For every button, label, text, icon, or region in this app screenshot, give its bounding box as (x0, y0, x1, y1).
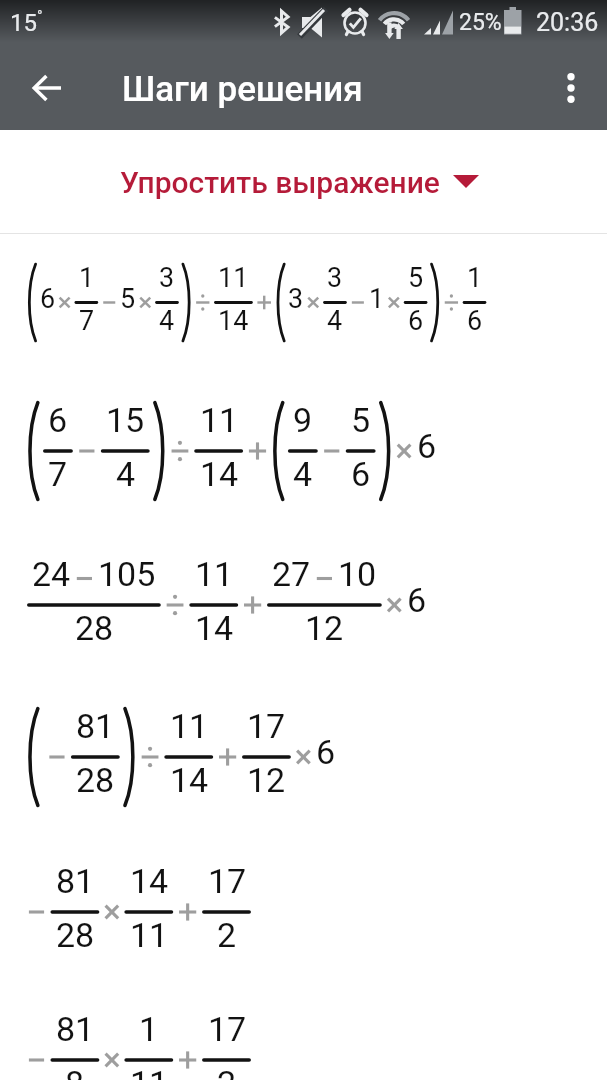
staticText: Упростить выражение (120, 165, 440, 200)
staticText: 6 (467, 305, 483, 337)
staticText: Шаги решения (122, 69, 363, 110)
staticText: 11 (130, 915, 169, 955)
staticText: 81 (56, 861, 95, 901)
staticText: 7 (48, 454, 68, 494)
staticText: 12 (247, 760, 286, 800)
staticText: 81 (56, 1009, 95, 1049)
staticText: 3 (288, 283, 304, 315)
button[interactable]: Упростить выражение (0, 130, 607, 233)
staticText: 7 (79, 305, 95, 337)
staticText: 11 (218, 262, 249, 294)
staticText: 14 (195, 608, 234, 648)
staticText: 25% (459, 9, 502, 36)
button[interactable]: More options (543, 60, 599, 116)
staticText: 15 (106, 400, 145, 440)
staticText: 6 (316, 732, 336, 772)
staticText: 28 (75, 608, 114, 648)
staticText: 11 (200, 400, 239, 440)
staticText: 1 (467, 262, 483, 294)
staticText: 3 (327, 262, 343, 294)
staticText: 1 (79, 262, 95, 294)
staticText: 2 (217, 915, 237, 955)
staticText: 8 (65, 1063, 85, 1080)
staticText: 9 (293, 400, 313, 440)
staticText: 14 (200, 454, 239, 494)
staticText: 6 (351, 454, 371, 494)
staticText: 28 (56, 915, 95, 955)
staticText: 27 (272, 554, 311, 594)
staticText: 17 (247, 706, 286, 746)
staticText: 6 (407, 580, 427, 620)
staticText: 3 (159, 262, 175, 294)
staticText: 4 (159, 305, 175, 337)
staticText: ° (37, 7, 43, 25)
staticText: 14 (218, 305, 249, 337)
staticText: 11 (170, 706, 209, 746)
staticText: 5 (120, 283, 136, 315)
staticText: 24 (32, 554, 71, 594)
staticText: 105 (98, 554, 156, 594)
staticText: 1 (369, 283, 385, 315)
staticText: 11 (195, 554, 234, 594)
staticText: 1 (139, 1009, 159, 1049)
staticText: 10 (338, 554, 377, 594)
staticText: 14 (130, 861, 169, 901)
staticText: 28 (76, 760, 115, 800)
staticText: 4 (116, 454, 136, 494)
staticText: 14 (170, 760, 209, 800)
staticText: 12 (305, 608, 344, 648)
staticText: 20:36 (536, 8, 599, 37)
staticText: 11 (130, 1063, 169, 1080)
staticText: 6 (408, 305, 424, 337)
button[interactable]: Back (15, 56, 79, 120)
staticText: 5 (408, 262, 424, 294)
staticText: 5 (351, 400, 371, 440)
staticText: 81 (76, 706, 115, 746)
staticText: 4 (293, 454, 313, 494)
staticText: 2 (217, 1063, 237, 1080)
staticText: 4 (327, 305, 343, 337)
staticText: 6 (417, 426, 437, 466)
staticText: 6 (40, 283, 56, 315)
staticText: 17 (208, 861, 247, 901)
staticText: 6 (48, 400, 68, 440)
staticText: 15 (10, 9, 37, 37)
staticText: 17 (208, 1009, 247, 1049)
